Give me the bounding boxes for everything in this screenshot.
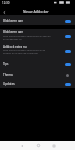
button[interactable]: Back (1, 9, 8, 16)
button[interactable]: Toggle (64, 19, 71, 23)
button[interactable]: Adblock extra nu (0, 44, 75, 59)
button[interactable]: Home (34, 141, 42, 150)
staticText: Blokkeren aan (3, 19, 24, 23)
staticText: Deze functie blokkeert advertenties in d… (3, 49, 46, 52)
button[interactable]: Recent apps (50, 141, 58, 150)
staticText: Blokkeren aan (3, 30, 24, 34)
button[interactable]: Blokkeren aan (0, 29, 75, 44)
button[interactable]: Toggle (64, 62, 71, 66)
button[interactable]: Blokkeren aan (0, 15, 75, 25)
staticText: 12:30 (2, 1, 10, 5)
staticText: en op websites nu (3, 38, 22, 41)
staticText: browser en in apps die je gebruikt (3, 52, 38, 55)
button[interactable]: Thema (0, 70, 75, 80)
staticText: Thema (3, 73, 13, 77)
button[interactable]: Toggle (64, 82, 71, 86)
button[interactable]: Back (18, 141, 26, 150)
button[interactable]: Toggle (64, 49, 71, 53)
button[interactable]: Updates (0, 79, 75, 89)
button[interactable]: Toggle (64, 34, 71, 38)
staticText: Adblock extra nu (3, 45, 27, 49)
staticText: Updates (3, 82, 15, 86)
staticText: Tips (3, 62, 9, 66)
staticText: Nieuw Adblocker (23, 10, 49, 14)
staticText: Deze functie blokkeert advertenties in a… (3, 35, 51, 38)
button[interactable]: Tips (0, 59, 75, 69)
